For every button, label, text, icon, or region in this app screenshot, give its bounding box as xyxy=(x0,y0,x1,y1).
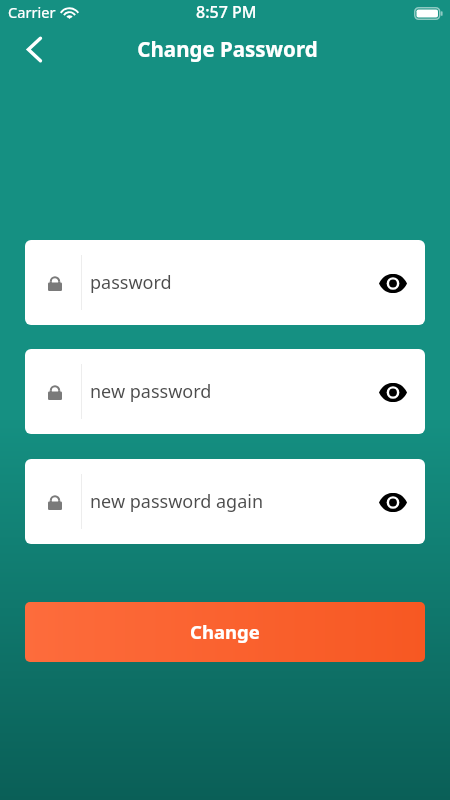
staticText: Change Password xyxy=(137,35,318,63)
button[interactable]: Show password xyxy=(369,479,415,525)
staticText: Change xyxy=(190,619,260,644)
button[interactable]: new password again xyxy=(25,459,425,544)
button[interactable]: new password xyxy=(25,349,425,434)
staticText: 8:57 PM xyxy=(196,1,257,23)
staticText: Carrier xyxy=(8,2,56,22)
staticText: password xyxy=(90,270,172,295)
staticText: new password again xyxy=(90,489,264,514)
button[interactable]: Show password xyxy=(369,369,415,415)
button[interactable]: Back xyxy=(11,26,57,72)
staticText: new password xyxy=(90,379,212,404)
button[interactable]: password xyxy=(25,240,425,325)
button[interactable]: Change xyxy=(25,602,425,662)
button[interactable]: Show password xyxy=(369,260,415,306)
